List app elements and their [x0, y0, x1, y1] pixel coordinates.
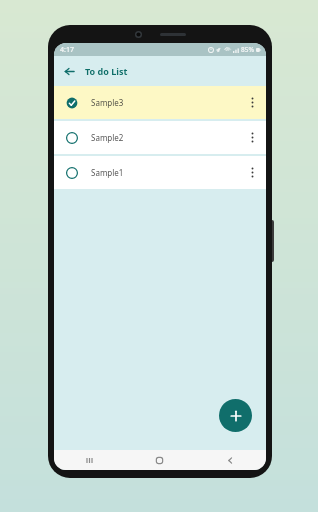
button[interactable]: More options — [241, 156, 263, 189]
button[interactable]: More options — [241, 121, 263, 154]
staticText: To do List — [85, 65, 128, 77]
button[interactable]: Mark complete — [63, 164, 81, 182]
button[interactable]: Mark complete — [54, 121, 266, 154]
staticText: 4:17 — [60, 45, 74, 55]
button[interactable]: Home — [124, 450, 195, 470]
button[interactable]: Mark complete — [54, 156, 266, 189]
staticText: 85% — [241, 45, 254, 54]
button[interactable]: Mark incomplete — [54, 86, 266, 119]
button[interactable]: Mark complete — [63, 129, 81, 147]
staticText: Sample2 — [91, 132, 241, 143]
button[interactable]: More options — [241, 86, 263, 119]
button[interactable]: Add task — [219, 399, 252, 432]
button[interactable]: Back — [195, 450, 266, 470]
button[interactable]: Back — [59, 61, 79, 81]
button[interactable]: Mark incomplete — [63, 94, 81, 112]
staticText: Sample3 — [91, 97, 241, 108]
staticText: Sample1 — [91, 167, 241, 178]
button[interactable]: Recent apps — [54, 450, 124, 470]
